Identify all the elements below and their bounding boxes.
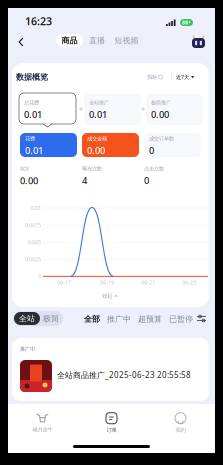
- staticText: 直播: [89, 36, 105, 45]
- button[interactable]: 推广中: [100, 312, 131, 326]
- staticText: 推广中: [107, 314, 131, 324]
- staticText: ROI: [20, 165, 29, 172]
- button[interactable]: 商品: [56, 34, 83, 47]
- staticText: 0.00: [87, 144, 105, 156]
- staticText: 收起: [102, 293, 112, 299]
- staticText: 磁力金牛: [32, 426, 52, 433]
- button[interactable]: 已暂停: [162, 312, 193, 326]
- button[interactable]: 极简: [40, 312, 62, 325]
- staticText: 极简推广: [151, 99, 171, 106]
- staticText: 06-23: [182, 279, 196, 286]
- staticText: 0.01: [31, 204, 41, 212]
- staticText: 数据概览: [16, 72, 48, 82]
- staticText: 4: [82, 174, 87, 186]
- staticText: 16:23: [25, 14, 52, 28]
- staticText: 0.01: [25, 144, 43, 156]
- staticText: 全站商品推广_2025-06-23 20:55:58: [57, 370, 191, 380]
- staticText: 全站: [19, 314, 35, 323]
- staticText: 0: [38, 273, 41, 280]
- staticText: 0.0025: [25, 256, 41, 263]
- staticText: 点击次数: [144, 165, 164, 172]
- button[interactable]: 指标: [147, 74, 162, 80]
- button[interactable]: 收起: [90, 291, 130, 301]
- staticText: 06-17: [57, 279, 71, 286]
- staticText: 88+: [182, 19, 191, 26]
- staticText: 我的: [175, 427, 185, 433]
- staticText: 商品: [61, 36, 77, 45]
- button[interactable]: 我的: [146, 410, 215, 436]
- staticText: 0.00: [20, 174, 38, 187]
- button[interactable]: Back: [12, 33, 30, 51]
- staticText: 0.0075: [25, 222, 41, 229]
- button[interactable]: Filter: [197, 314, 206, 323]
- staticText: 极简: [43, 314, 59, 323]
- button[interactable]: 直播: [83, 34, 111, 47]
- button[interactable]: 全部: [84, 312, 100, 326]
- staticText: 全站推广: [89, 99, 109, 106]
- staticText: 成交订单数: [149, 135, 174, 142]
- button[interactable]: 订单: [77, 410, 146, 436]
- staticText: 订单: [106, 427, 116, 433]
- staticText: 短视频: [114, 36, 138, 45]
- button[interactable]: 磁力金牛: [8, 410, 77, 436]
- staticText: 总花费: [24, 99, 39, 106]
- staticText: 已暂停: [169, 314, 193, 324]
- staticText: 全部: [84, 314, 100, 324]
- button[interactable]: [12, 338, 209, 401]
- staticText: 0.00: [151, 108, 169, 120]
- staticText: 0: [149, 144, 154, 156]
- staticText: 近7天: [176, 73, 189, 81]
- staticText: 成交金额: [87, 135, 107, 142]
- button[interactable]: 近7天: [176, 73, 194, 81]
- staticText: 指标: [147, 74, 157, 80]
- staticText: 超预算: [138, 314, 162, 324]
- button[interactable]: AI assistant: [190, 34, 207, 49]
- staticText: 06-19: [100, 279, 114, 286]
- staticText: 0: [144, 174, 149, 186]
- staticText: 0.01: [89, 108, 107, 120]
- staticText: 0.005: [28, 239, 41, 246]
- staticText: 0.01: [24, 108, 42, 120]
- staticText: 曝光次数: [82, 165, 102, 172]
- button[interactable]: 全站: [14, 312, 40, 325]
- button[interactable]: 超预算: [131, 312, 162, 326]
- staticText: 06-21: [141, 279, 155, 286]
- staticText: 推广中: [20, 346, 35, 352]
- staticText: 花费: [25, 135, 35, 142]
- button[interactable]: 短视频: [111, 34, 142, 47]
